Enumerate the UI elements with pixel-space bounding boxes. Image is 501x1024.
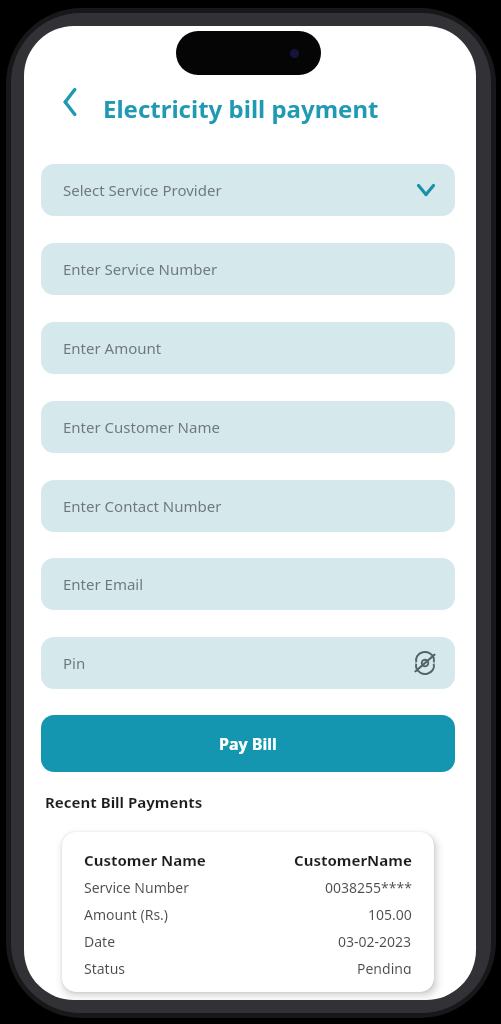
staticText: Date: [84, 932, 116, 951]
staticText: Enter Customer Name: [63, 417, 220, 437]
staticText: Customer Name: [84, 850, 206, 870]
button[interactable]: Enter Contact Number: [41, 480, 455, 532]
button[interactable]: Pay Bill: [41, 715, 455, 772]
staticText: 03-02-2023: [338, 932, 412, 951]
staticText: Electricity bill payment: [103, 92, 379, 125]
staticText: Pin: [63, 653, 86, 673]
staticText: Status: [84, 959, 126, 974]
button[interactable]: Enter Customer Name: [41, 401, 455, 453]
staticText: Amount (Rs.): [84, 905, 169, 924]
button[interactable]: Enter Service Number: [41, 243, 455, 295]
button[interactable]: Show pin: [411, 649, 439, 677]
button[interactable]: Customer Name: [62, 832, 434, 992]
button[interactable]: Pin: [41, 637, 455, 689]
staticText: Service Number: [84, 878, 190, 897]
staticText: 0038255****: [325, 878, 412, 897]
staticText: Enter Amount: [63, 338, 162, 358]
staticText: CustomerName: [294, 850, 412, 870]
staticText: Pending: [357, 959, 412, 974]
button[interactable]: Select Service Provider: [41, 164, 455, 216]
staticText: 105.00: [368, 905, 412, 924]
other: Expand list: [413, 177, 439, 203]
staticText: Enter Email: [63, 574, 144, 594]
staticText: Enter Contact Number: [63, 496, 222, 516]
button[interactable]: Back: [48, 82, 88, 122]
staticText: Recent Bill Payments: [45, 792, 203, 812]
staticText: Enter Service Number: [63, 259, 218, 279]
staticText: Pay Bill: [219, 733, 277, 755]
button[interactable]: Enter Email: [41, 558, 455, 610]
button[interactable]: Enter Amount: [41, 322, 455, 374]
staticText: Select Service Provider: [63, 180, 222, 200]
